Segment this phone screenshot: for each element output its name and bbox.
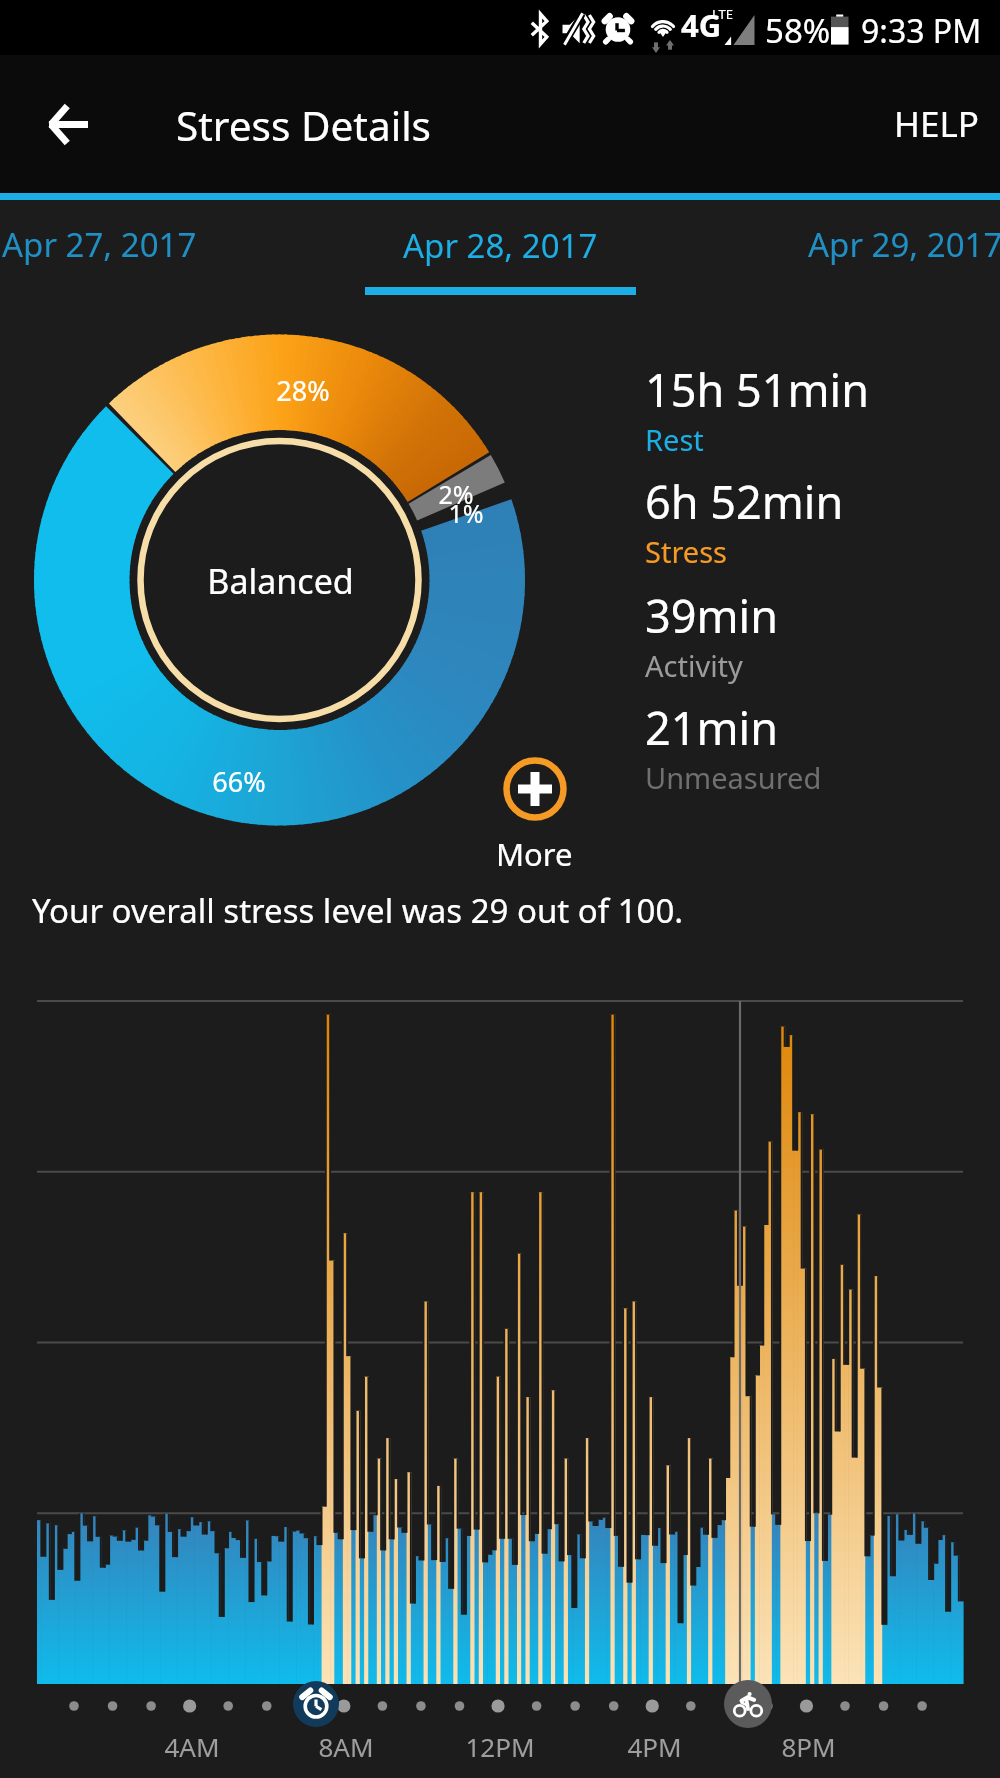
button[interactable]: Sleep event: [293, 1681, 339, 1727]
staticText: 4AM: [164, 1729, 220, 1764]
button[interactable]: Cycling activity: [724, 1680, 772, 1728]
staticText: 66%: [212, 763, 266, 800]
staticText: Apr 29, 2017: [808, 222, 1000, 267]
staticText: Unmeasured: [645, 758, 822, 797]
staticText: 8AM: [318, 1729, 374, 1764]
staticText: More: [496, 833, 573, 875]
staticText: 21min: [645, 697, 778, 758]
staticText: Your overall stress level was 29 out of …: [32, 888, 684, 933]
button[interactable]: Apr 27, 2017: [0, 206, 205, 283]
staticText: 15h 51min: [645, 359, 869, 420]
staticText: 6h 52min: [645, 471, 844, 532]
staticText: 2%: [438, 477, 474, 511]
button[interactable]: More: [496, 755, 573, 875]
staticText: Rest: [645, 420, 704, 459]
staticText: 4PM: [627, 1729, 682, 1764]
button[interactable]: Apr 28, 2017: [365, 223, 636, 295]
staticText: 9:33 PM: [861, 9, 982, 53]
staticText: 58%: [765, 8, 831, 53]
staticText: Apr 28, 2017: [403, 223, 598, 268]
staticText: LTE: [712, 5, 734, 23]
staticText: 8PM: [781, 1729, 836, 1764]
other: More: [501, 755, 569, 823]
staticText: HELP: [894, 100, 979, 148]
staticText: 28%: [276, 372, 330, 409]
staticText: Stress: [645, 532, 727, 571]
button[interactable]: Apr 29, 2017: [800, 206, 1000, 283]
staticText: 4G: [681, 4, 722, 46]
staticText: Stress Details: [176, 98, 431, 153]
staticText: 12PM: [465, 1729, 535, 1764]
staticText: 1%: [448, 496, 484, 530]
staticText: 39min: [645, 585, 778, 646]
staticText: Activity: [645, 646, 743, 685]
staticText: Apr 27, 2017: [2, 222, 197, 267]
staticText: Balanced: [207, 558, 354, 604]
button[interactable]: HELP: [873, 86, 1000, 162]
button[interactable]: Back: [22, 78, 114, 170]
